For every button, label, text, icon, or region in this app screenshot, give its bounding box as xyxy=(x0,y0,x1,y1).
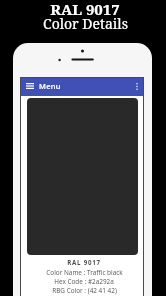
staticText: Menu xyxy=(39,81,61,91)
staticText: Hex Code : #2a292a xyxy=(54,277,114,286)
button[interactable]: Open navigation menu xyxy=(21,78,143,96)
staticText: RBG Color : (42 41 42) xyxy=(52,286,117,295)
staticText: Color Details xyxy=(43,14,128,33)
button[interactable] xyxy=(27,98,138,255)
staticText: Color Name : Traffic black xyxy=(46,268,123,277)
button[interactable]: More options xyxy=(131,80,143,92)
button[interactable]: Open navigation menu xyxy=(24,80,36,92)
staticText: RAL 9017 xyxy=(50,0,120,19)
staticText: RAL 9017 xyxy=(67,258,101,266)
